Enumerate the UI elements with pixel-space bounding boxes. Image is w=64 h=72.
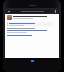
button[interactable]: Home: [31, 60, 34, 62]
button[interactable]: [7, 22, 53, 26]
button[interactable]: Profile photo: [7, 15, 12, 20]
button[interactable]: Back: [5, 8, 59, 14]
button[interactable]: [7, 35, 57, 36]
button[interactable]: Back: [7, 10, 10, 13]
button[interactable]: More options: [54, 10, 57, 13]
button[interactable]: [7, 28, 57, 33]
button[interactable]: Profile photo: [7, 15, 57, 21]
button[interactable]: [11, 10, 53, 13]
